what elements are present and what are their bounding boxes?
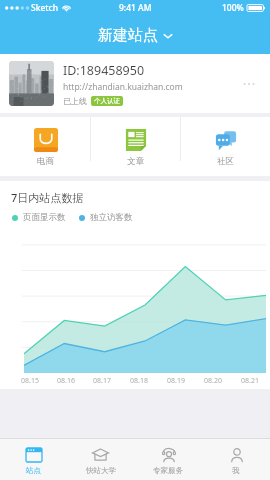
staticText: 100% bbox=[222, 2, 244, 14]
staticText: 社区 bbox=[217, 156, 234, 167]
staticText: 快站大学 bbox=[86, 466, 116, 475]
button[interactable]: 站点 bbox=[0, 439, 67, 480]
button[interactable]: 新建站点 bbox=[90, 22, 181, 49]
staticText: 个人认证 bbox=[94, 97, 120, 105]
staticText: 专家服务 bbox=[153, 466, 183, 475]
staticText: 08.17 bbox=[93, 376, 111, 386]
staticText: Sketch bbox=[31, 2, 59, 14]
staticText: 7日内站点数据 bbox=[11, 190, 84, 205]
button[interactable]: 我 bbox=[202, 439, 270, 480]
staticText: 9:41 AM bbox=[119, 2, 152, 14]
staticText: 已上线 bbox=[63, 96, 87, 106]
staticText: 站点 bbox=[26, 466, 41, 475]
button[interactable]: 快站大学 bbox=[67, 439, 134, 480]
staticText: ID:189458950 bbox=[63, 62, 145, 79]
staticText: 新建站点 bbox=[98, 26, 158, 45]
staticText: http://zhandian.kuaizhan.com bbox=[63, 81, 183, 93]
staticText: 独立访客数 bbox=[90, 212, 133, 223]
staticText: 08.15 bbox=[21, 376, 39, 386]
staticText: 08.18 bbox=[130, 376, 148, 386]
button[interactable]: 社区 bbox=[181, 117, 270, 176]
button[interactable]: 文章 bbox=[91, 117, 180, 176]
button[interactable]: 电商 bbox=[0, 117, 90, 176]
staticText: 我 bbox=[232, 466, 240, 475]
button[interactable]: More options bbox=[237, 72, 261, 96]
button[interactable]: ID:189458950 bbox=[0, 54, 270, 113]
staticText: 文章 bbox=[127, 156, 144, 167]
staticText: 页面显示数 bbox=[23, 212, 66, 223]
staticText: 08.20 bbox=[204, 376, 222, 386]
staticText: 08.16 bbox=[57, 376, 75, 386]
staticText: 08.21 bbox=[241, 376, 259, 386]
staticText: 08.19 bbox=[167, 376, 185, 386]
staticText: 电商 bbox=[37, 156, 54, 167]
button[interactable]: 专家服务 bbox=[134, 439, 202, 480]
